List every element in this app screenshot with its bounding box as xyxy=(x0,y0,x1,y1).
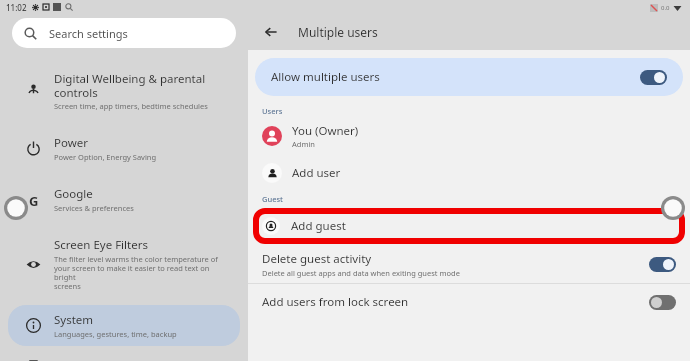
staticText: Add users from lock screen xyxy=(262,294,409,310)
staticText: Screen Eye Filters xyxy=(54,237,148,253)
button[interactable]: System xyxy=(8,305,240,346)
staticText: Add guest xyxy=(291,218,346,234)
staticText: Delete all guest apps and data when exit… xyxy=(262,268,460,278)
button[interactable]: Back xyxy=(258,19,284,45)
staticText: Languages, gestures, time, backup xyxy=(54,329,177,339)
staticText: Add user xyxy=(292,165,341,181)
staticText: Power Option, Energy Saving xyxy=(54,152,157,162)
button[interactable]: Add user xyxy=(248,160,690,186)
button[interactable]: Digital Wellbeing & parental controls xyxy=(8,64,240,118)
button[interactable]: Toggle on xyxy=(640,70,667,85)
button[interactable]: Toggle on xyxy=(649,257,676,272)
button[interactable]: Allow multiple users xyxy=(255,58,683,96)
button[interactable]: Power xyxy=(8,128,240,169)
button[interactable]: Toggle off xyxy=(649,295,676,310)
staticText: Services & preferences xyxy=(54,203,134,213)
button[interactable]: G xyxy=(8,179,240,220)
button[interactable]: About tablet xyxy=(8,354,240,361)
staticText: Delete guest activity xyxy=(262,251,372,267)
button[interactable]: You (Owner) xyxy=(248,120,690,152)
staticText: Digital Wellbeing & parental controls xyxy=(54,71,206,100)
staticText: Screen time, app timers, bedtime schedul… xyxy=(54,101,208,111)
staticText: Users xyxy=(262,106,283,116)
staticText: Multiple users xyxy=(298,24,378,40)
staticText: System xyxy=(54,312,94,328)
button[interactable]: Search settings xyxy=(12,18,236,48)
button[interactable]: Add users from lock screen xyxy=(248,284,690,320)
staticText: Admin xyxy=(292,139,315,149)
button[interactable]: Add guest xyxy=(248,206,690,246)
staticText: Search settings xyxy=(49,26,128,41)
button[interactable]: Delete guest activity xyxy=(248,249,690,283)
staticText: Guest xyxy=(262,194,283,204)
staticText: 11:02 xyxy=(6,2,27,13)
staticText: You (Owner) xyxy=(292,123,359,139)
staticText: Allow multiple users xyxy=(271,69,380,85)
staticText: The filter level warms the color tempera… xyxy=(54,254,232,292)
staticText: Google xyxy=(54,186,93,202)
button[interactable]: Screen Eye Filters xyxy=(8,230,240,299)
staticText: Power xyxy=(54,135,88,151)
staticText: G xyxy=(29,192,39,207)
staticText: 0.0 xyxy=(661,4,670,12)
